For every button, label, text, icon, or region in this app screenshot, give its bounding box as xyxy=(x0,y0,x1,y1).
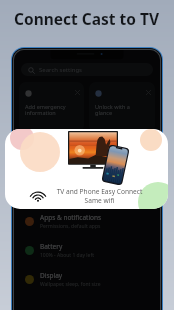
staticText: Permissions, default apps xyxy=(40,223,101,230)
staticText: Search settings xyxy=(39,66,82,74)
button[interactable]: Search settings xyxy=(21,63,153,76)
staticText: Display xyxy=(40,271,63,280)
staticText: Apps & notifications xyxy=(40,213,102,222)
staticText: Add emergency information xyxy=(25,103,66,117)
staticText: Unlock with a glance xyxy=(95,103,130,117)
staticText: 100% - About 1 day left xyxy=(40,252,94,259)
staticText: Battery xyxy=(40,242,63,251)
button[interactable]: Battery xyxy=(14,236,160,265)
button[interactable]: Unlock with a glance xyxy=(89,82,155,132)
button[interactable]: Display xyxy=(14,265,160,294)
button[interactable]: Apps & notifications xyxy=(14,207,160,236)
staticText: TV and Phone Easy Connect Same wifi xyxy=(47,187,152,205)
staticText: Connect Cast to TV xyxy=(14,8,160,29)
button[interactable]: Add emergency information xyxy=(19,82,84,132)
staticText: Wallpaper, sleep, font size xyxy=(40,281,101,288)
button[interactable]: TV and Phone Easy Connect Same wifi xyxy=(5,129,168,209)
